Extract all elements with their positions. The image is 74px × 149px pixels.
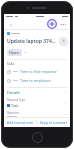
button[interactable]: Assign: [59, 37, 68, 46]
button[interactable]: Add: [47, 19, 57, 29]
staticText: Request Type: [7, 98, 26, 102]
staticText: Time to resolution: [20, 78, 51, 83]
button[interactable]: Back: [7, 21, 14, 28]
staticText: Reply to customer: [40, 121, 68, 125]
staticText: Add internal note: [7, 121, 34, 125]
button[interactable]: Add internal note: [4, 118, 36, 127]
staticText: Details: [7, 90, 21, 95]
staticText: SLAs: [7, 62, 15, 66]
button[interactable]: Time to resolution: [4, 77, 70, 84]
staticText: Reporter: [7, 111, 20, 115]
staticText: Time to first response: [20, 69, 57, 74]
button[interactable]: More options: [59, 20, 67, 28]
button[interactable]: Reporter: [4, 111, 70, 117]
button[interactable]: Details: [4, 90, 70, 95]
staticText: Task: [11, 103, 19, 108]
staticText: Update laptop 374.D4: [7, 38, 57, 45]
button[interactable]: Request Type: [4, 98, 70, 108]
staticText: Open: [9, 50, 20, 55]
button[interactable]: Time to first response: [4, 68, 70, 75]
button[interactable]: Reply to customer: [37, 118, 70, 127]
button[interactable]: Open: [7, 49, 22, 56]
